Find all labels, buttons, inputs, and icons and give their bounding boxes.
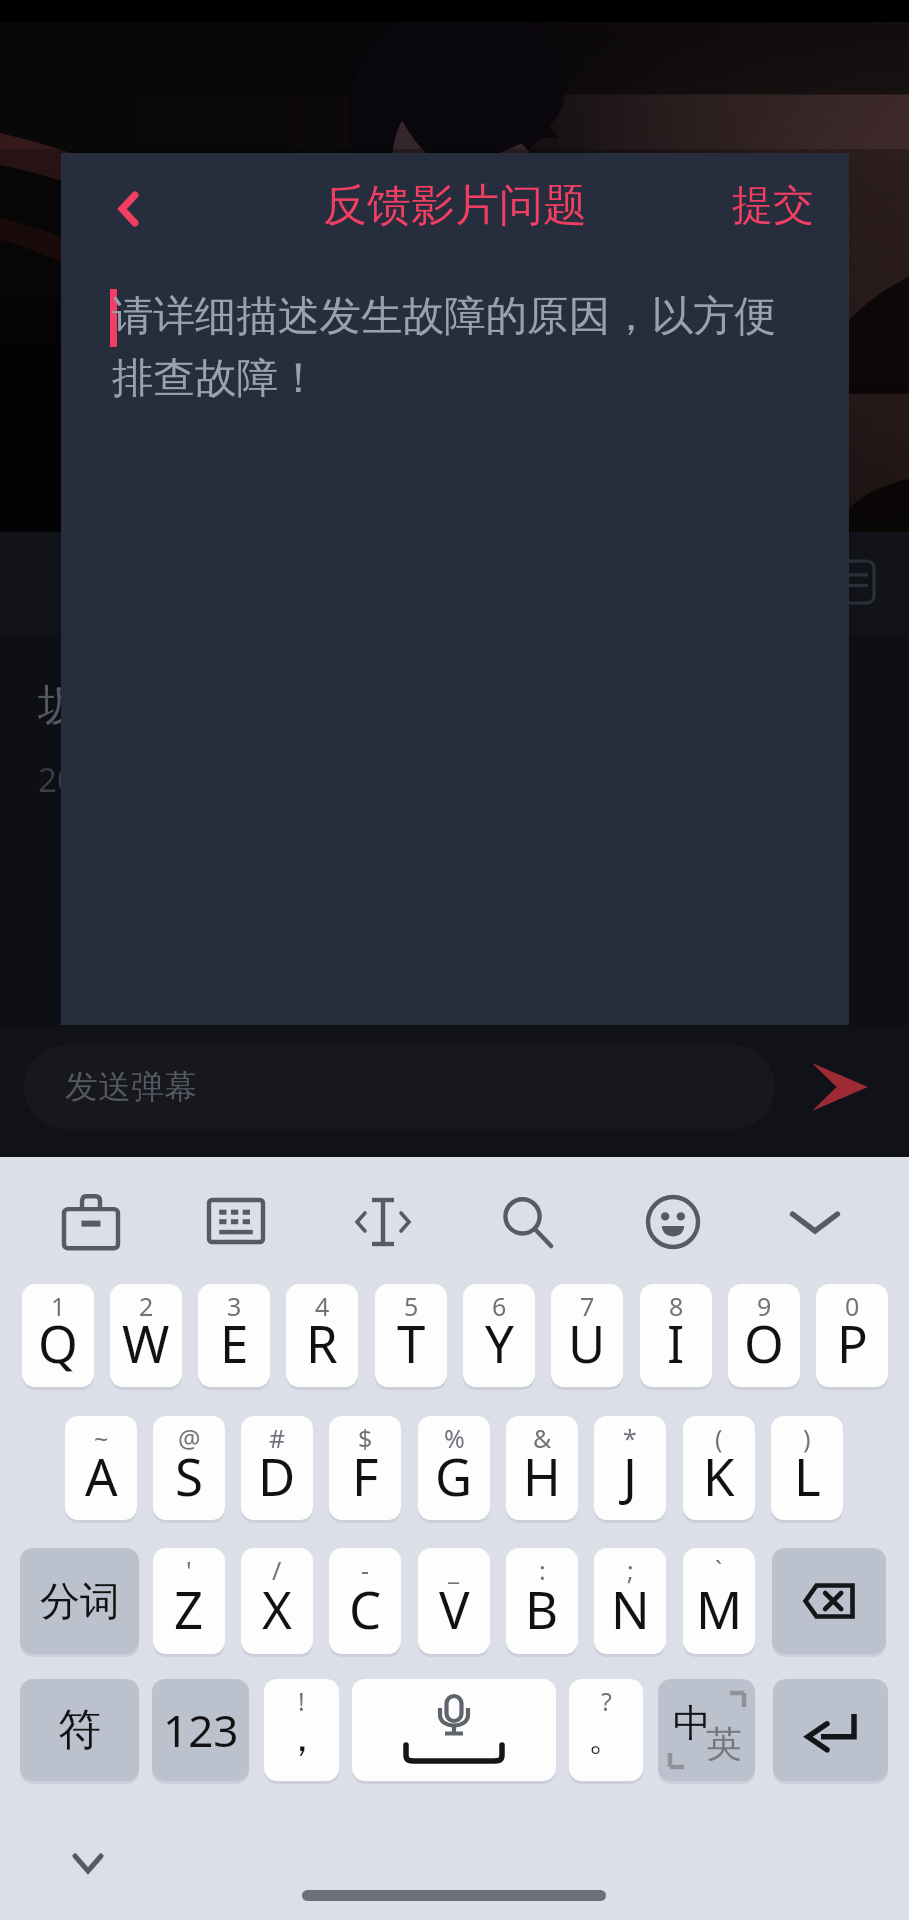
- staticText: (: [715, 1421, 723, 1455]
- button[interactable]: 分词: [20, 1548, 139, 1654]
- staticText: J: [623, 1441, 637, 1510]
- button[interactable]: 8: [640, 1284, 712, 1387]
- staticText: 1: [51, 1289, 66, 1323]
- staticText: 4: [315, 1289, 330, 1323]
- staticText: V: [439, 1574, 470, 1643]
- staticText: 英: [706, 1721, 742, 1766]
- button[interactable]: 符: [20, 1679, 139, 1781]
- staticText: :: [539, 1553, 546, 1587]
- staticText: L: [794, 1441, 821, 1510]
- button[interactable]: 5: [375, 1284, 447, 1387]
- staticText: 5: [404, 1289, 419, 1323]
- staticText: F: [352, 1441, 379, 1510]
- button[interactable]: 6: [463, 1284, 535, 1387]
- button[interactable]: %: [418, 1416, 490, 1520]
- staticText: C: [349, 1574, 382, 1643]
- staticText: @: [178, 1421, 201, 1455]
- button[interactable]: 提交: [697, 167, 849, 251]
- button[interactable]: 3: [198, 1284, 270, 1387]
- button[interactable]: 0: [816, 1284, 888, 1387]
- button[interactable]: Episode list: [827, 550, 889, 614]
- staticText: *: [623, 1421, 637, 1455]
- staticText: 123: [163, 1700, 239, 1760]
- staticText: 符: [58, 1703, 101, 1757]
- button[interactable]: Search: [479, 1174, 575, 1270]
- button[interactable]: ): [771, 1416, 843, 1520]
- button[interactable]: #: [241, 1416, 313, 1520]
- staticText: `: [715, 1553, 723, 1587]
- staticText: 分词: [40, 1576, 120, 1626]
- staticText: U: [568, 1308, 606, 1377]
- button[interactable]: ?: [569, 1679, 643, 1781]
- staticText: W: [122, 1308, 170, 1377]
- staticText: 8: [669, 1289, 684, 1323]
- staticText: 。: [588, 1715, 624, 1760]
- button[interactable]: Back: [88, 169, 168, 249]
- button[interactable]: Send: [790, 1038, 890, 1136]
- staticText: K: [703, 1441, 735, 1510]
- button[interactable]: Text cursor: [335, 1174, 431, 1270]
- button[interactable]: 7: [551, 1284, 623, 1387]
- button[interactable]: Hide keyboard: [56, 1833, 120, 1893]
- staticText: !: [298, 1684, 305, 1718]
- staticText: 反馈影片问题: [323, 178, 587, 233]
- button[interactable]: 发送弹幕: [24, 1045, 775, 1129]
- button[interactable]: /: [241, 1548, 313, 1654]
- button[interactable]: &: [506, 1416, 578, 1520]
- staticText: /: [272, 1553, 282, 1587]
- staticText: ，: [282, 1712, 322, 1762]
- staticText: B: [525, 1574, 559, 1643]
- button[interactable]: Backspace: [772, 1548, 886, 1654]
- staticText: ;: [627, 1553, 634, 1587]
- staticText: Q: [38, 1308, 78, 1377]
- button[interactable]: Keyboard layout: [188, 1174, 284, 1270]
- staticText: %: [444, 1421, 465, 1455]
- button[interactable]: *: [594, 1416, 666, 1520]
- staticText: 坂道上的阿波罗: [38, 678, 346, 733]
- button[interactable]: :: [506, 1548, 578, 1654]
- staticText: 3: [227, 1289, 242, 1323]
- button[interactable]: Clipboard: [43, 1174, 139, 1270]
- staticText: O: [744, 1308, 784, 1377]
- button[interactable]: !: [264, 1679, 339, 1781]
- button[interactable]: 123: [152, 1679, 249, 1781]
- staticText: A: [85, 1441, 118, 1510]
- button[interactable]: Emoji: [625, 1174, 721, 1270]
- staticText: Y: [485, 1308, 514, 1377]
- button[interactable]: $: [329, 1416, 401, 1520]
- button[interactable]: Chinese English toggle: [658, 1679, 755, 1781]
- button[interactable]: 请详细描述发生故障的原因，以方便 排查故障！: [61, 264, 849, 1025]
- staticText: N: [611, 1574, 650, 1643]
- button[interactable]: Enter: [773, 1679, 888, 1781]
- staticText: ): [803, 1421, 811, 1455]
- button[interactable]: 4: [286, 1284, 358, 1387]
- staticText: 6: [492, 1289, 507, 1323]
- button[interactable]: ;: [594, 1548, 666, 1654]
- button[interactable]: _: [418, 1548, 490, 1654]
- staticText: M: [696, 1574, 743, 1643]
- staticText: 2012 · 日本 · 青春: [38, 757, 298, 802]
- button[interactable]: 2: [110, 1284, 182, 1387]
- staticText: R: [306, 1308, 338, 1377]
- staticText: I: [667, 1308, 685, 1377]
- button[interactable]: Collapse: [767, 1174, 863, 1270]
- button[interactable]: @: [153, 1416, 225, 1520]
- button[interactable]: Space: [352, 1679, 556, 1781]
- staticText: H: [523, 1441, 561, 1510]
- button[interactable]: `: [683, 1548, 755, 1654]
- staticText: ~: [94, 1421, 109, 1455]
- staticText: #: [269, 1421, 286, 1455]
- staticText: ': [186, 1553, 192, 1587]
- staticText: 0: [845, 1289, 860, 1323]
- button[interactable]: -: [329, 1548, 401, 1654]
- staticText: 7: [580, 1289, 595, 1323]
- button[interactable]: 1: [22, 1284, 94, 1387]
- button[interactable]: ': [153, 1548, 225, 1654]
- button[interactable]: 9: [728, 1284, 800, 1387]
- button[interactable]: (: [683, 1416, 755, 1520]
- button[interactable]: ~: [65, 1416, 137, 1520]
- staticText: 提交: [732, 180, 814, 232]
- staticText: E: [220, 1308, 249, 1377]
- staticText: ?: [601, 1684, 612, 1718]
- staticText: &: [533, 1421, 552, 1455]
